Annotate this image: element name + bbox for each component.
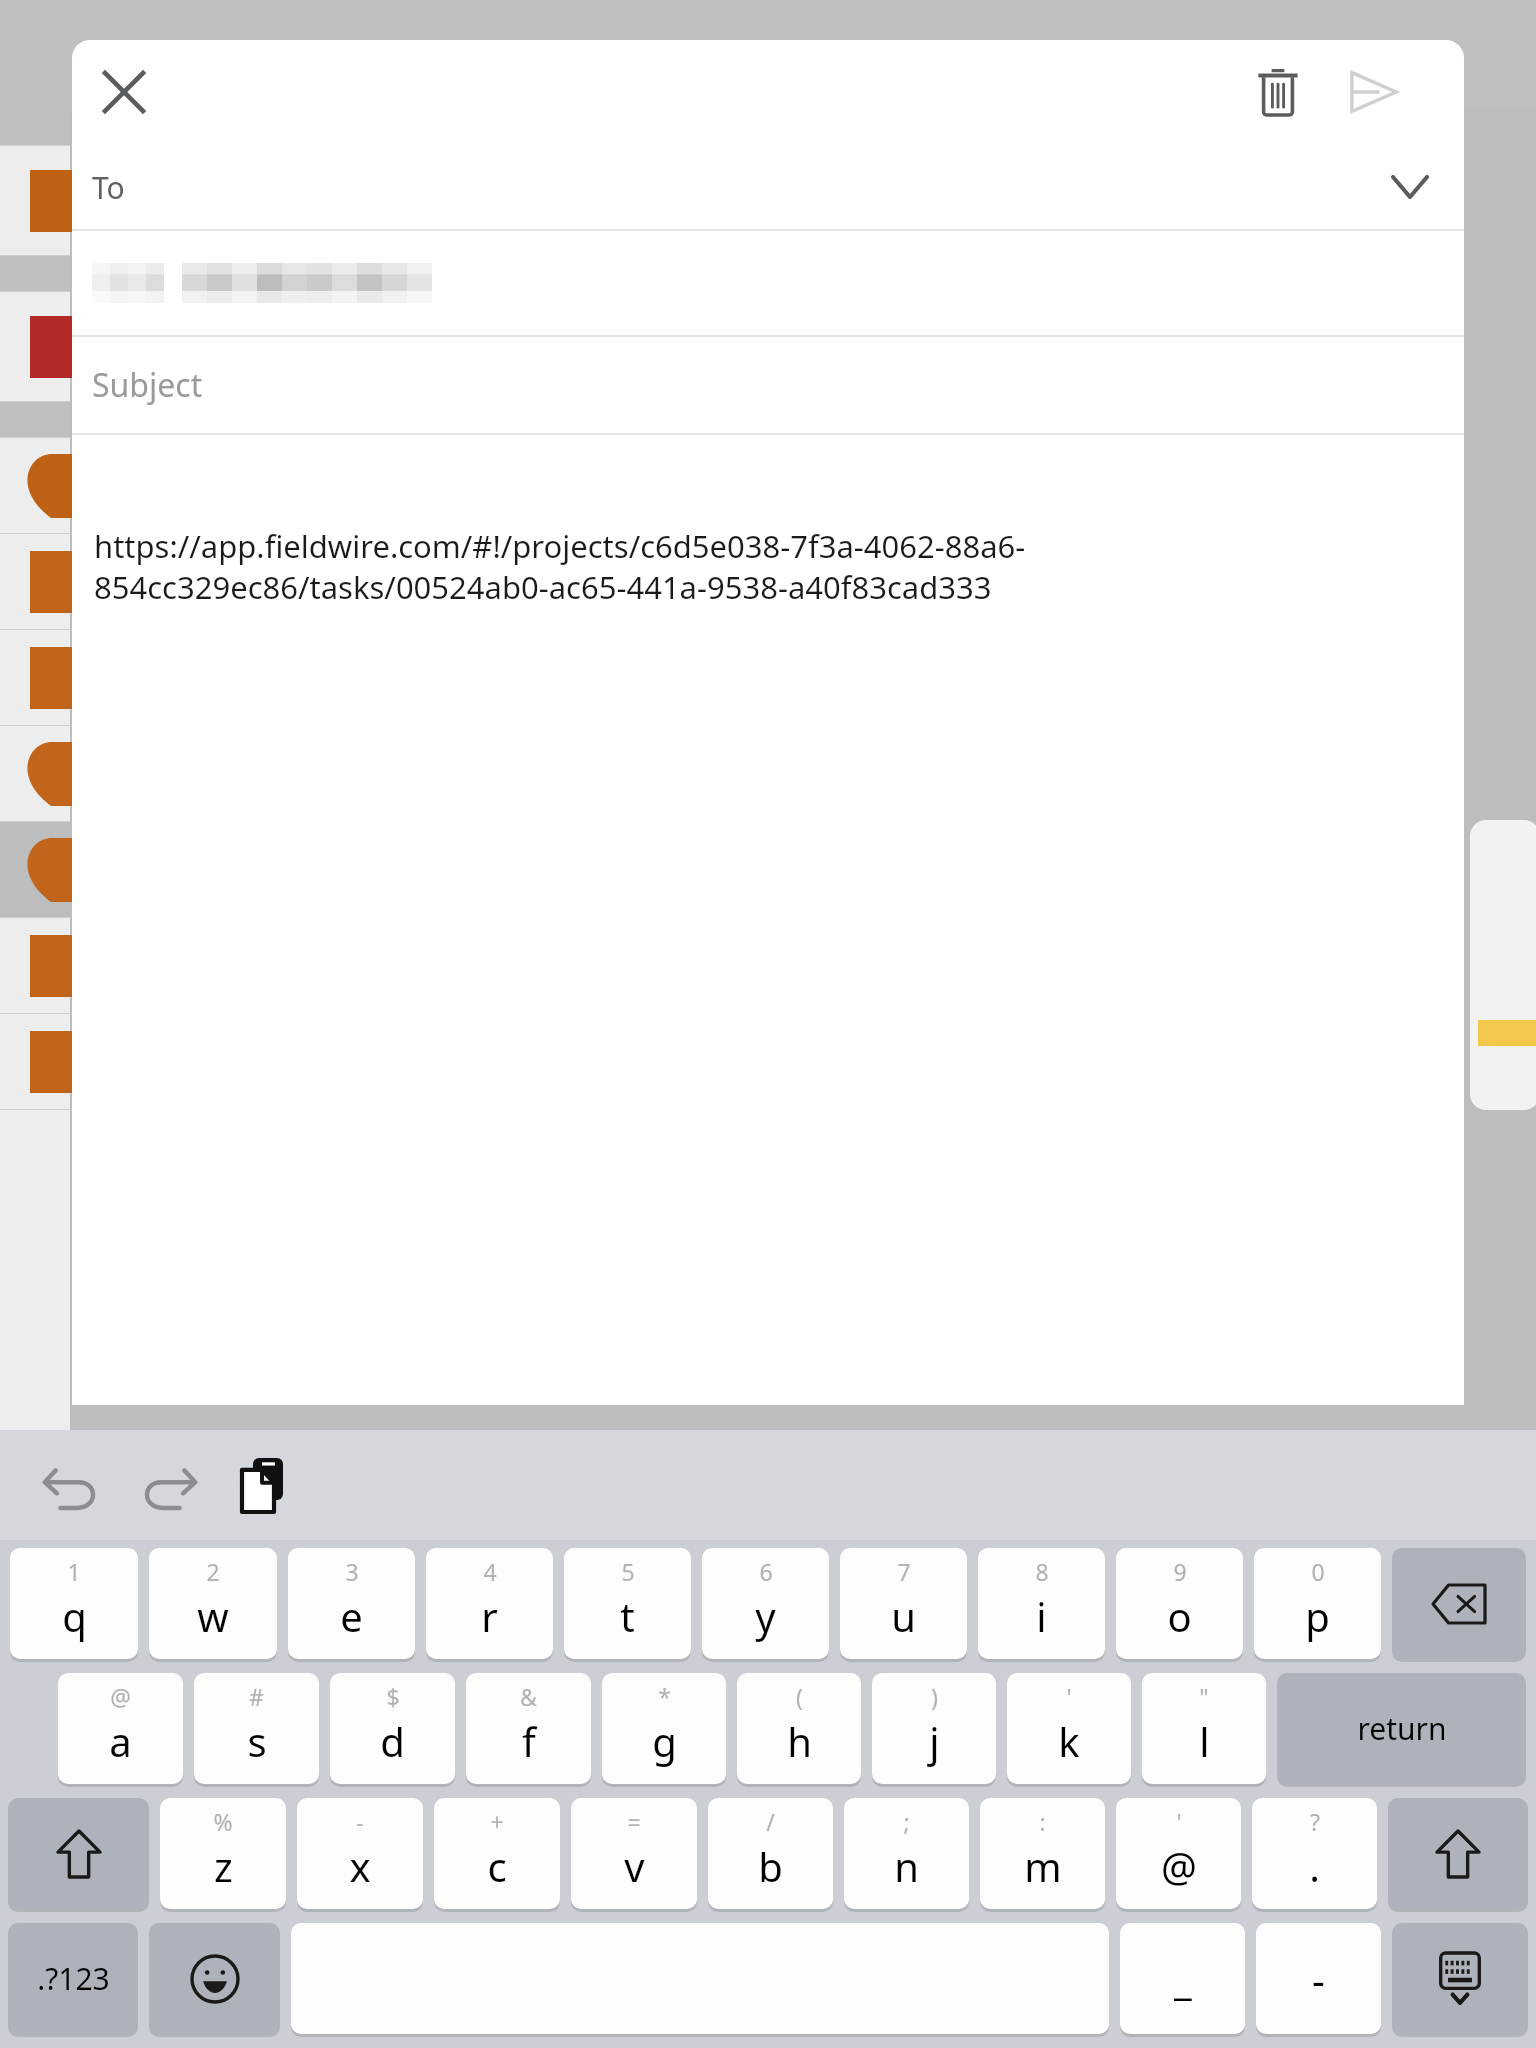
button[interactable]: + — [434, 1798, 560, 1909]
button[interactable]: * — [602, 1673, 726, 1784]
staticText: ) — [931, 1681, 938, 1712]
staticText: i — [1036, 1589, 1047, 1643]
staticText: m — [1024, 1839, 1062, 1893]
button[interactable]: 3 — [288, 1548, 415, 1659]
button[interactable]: # — [194, 1673, 319, 1784]
staticText: e — [340, 1589, 363, 1643]
staticText: d — [380, 1714, 405, 1768]
button[interactable]: Close — [80, 48, 168, 136]
staticText: o — [1167, 1589, 1192, 1643]
staticText: x — [349, 1839, 371, 1893]
button[interactable]: & — [466, 1673, 591, 1784]
staticText: 3 — [345, 1556, 359, 1587]
button[interactable]: _ — [1120, 1923, 1245, 2034]
button[interactable]: 7 — [840, 1548, 967, 1659]
button[interactable]: : — [980, 1798, 1105, 1909]
staticText: = — [627, 1806, 641, 1837]
button[interactable]: ' — [1007, 1673, 1131, 1784]
staticText: return — [1357, 1708, 1447, 1749]
button[interactable]: .?123 — [8, 1923, 138, 2034]
staticText: a — [109, 1714, 132, 1768]
staticText: 5 — [621, 1556, 635, 1587]
button[interactable]: Shift — [1388, 1798, 1528, 1909]
staticText: y — [755, 1589, 776, 1643]
button[interactable]: Hide keyboard — [1392, 1923, 1528, 2034]
staticText: j — [929, 1714, 940, 1768]
button[interactable]: https://app.fieldwire.com/#!/projects/c6… — [72, 435, 1464, 1405]
button[interactable]: - — [297, 1798, 423, 1909]
staticText: s — [247, 1714, 267, 1768]
staticText: g — [652, 1714, 677, 1768]
staticText: f — [522, 1714, 536, 1768]
button[interactable]: ) — [872, 1673, 996, 1784]
button[interactable]: Send — [1328, 46, 1420, 138]
button[interactable]: ( — [737, 1673, 861, 1784]
staticText: # — [249, 1681, 264, 1712]
staticText: : — [1039, 1806, 1046, 1837]
button[interactable]: 4 — [426, 1548, 553, 1659]
button[interactable]: / — [708, 1798, 833, 1909]
button[interactable]: 1 — [10, 1548, 138, 1659]
button[interactable]: 5 — [564, 1548, 691, 1659]
staticText: .?123 — [37, 1958, 110, 1999]
button[interactable]: Subject — [72, 337, 1464, 433]
button[interactable]: - — [1256, 1923, 1381, 2034]
staticText: https://app.fieldwire.com/#!/projects/c6… — [94, 525, 1026, 608]
staticText: 2 — [206, 1556, 220, 1587]
staticText: v — [624, 1839, 645, 1893]
staticText: ' — [1066, 1681, 1072, 1712]
staticText: 0 — [1311, 1556, 1325, 1587]
button[interactable]: ' — [1116, 1798, 1241, 1909]
staticText: - — [1312, 1952, 1325, 2006]
button[interactable]: Redo — [122, 1439, 214, 1531]
staticText: u — [891, 1589, 916, 1643]
staticText: . — [1309, 1839, 1320, 1893]
button[interactable]: % — [160, 1798, 286, 1909]
button[interactable]: To — [72, 145, 1464, 229]
button[interactable]: ? — [1252, 1798, 1377, 1909]
button[interactable] — [72, 231, 1464, 335]
button[interactable]: 8 — [978, 1548, 1105, 1659]
button[interactable]: Emoji — [149, 1923, 280, 2034]
button[interactable]: 0 — [1254, 1548, 1381, 1659]
button[interactable]: Backspace — [1392, 1548, 1526, 1659]
staticText: k — [1058, 1714, 1080, 1768]
button[interactable]: Paste — [218, 1439, 310, 1531]
staticText: To — [92, 167, 125, 208]
staticText: ? — [1310, 1806, 1320, 1837]
staticText: w — [197, 1589, 229, 1643]
staticText: ' — [1176, 1806, 1182, 1837]
button[interactable]: 2 — [149, 1548, 277, 1659]
staticText: b — [758, 1839, 783, 1893]
staticText: z — [214, 1839, 233, 1893]
button[interactable]: ; — [844, 1798, 969, 1909]
button[interactable]: = — [571, 1798, 697, 1909]
staticText: n — [894, 1839, 919, 1893]
button[interactable]: $ — [330, 1673, 455, 1784]
button[interactable]: 9 — [1116, 1548, 1243, 1659]
staticText: " — [1199, 1681, 1209, 1712]
button[interactable]: Undo — [26, 1439, 118, 1531]
button[interactable]: Delete draft — [1232, 46, 1324, 138]
staticText: h — [787, 1714, 812, 1768]
button[interactable]: 6 — [702, 1548, 829, 1659]
button[interactable]: @ — [58, 1673, 183, 1784]
staticText: + — [490, 1806, 504, 1837]
staticText: r — [481, 1589, 498, 1643]
staticText: * — [658, 1681, 671, 1712]
other: Expand recipients — [1374, 151, 1446, 223]
staticText: 7 — [897, 1556, 911, 1587]
staticText: t — [620, 1589, 635, 1643]
staticText: 4 — [483, 1556, 497, 1587]
staticText: @ — [110, 1681, 131, 1712]
staticText: 8 — [1035, 1556, 1049, 1587]
staticText: - — [356, 1806, 364, 1837]
button[interactable]: " — [1142, 1673, 1266, 1784]
staticText: & — [520, 1681, 537, 1712]
button[interactable]: Shift — [8, 1798, 149, 1909]
staticText: Subject — [92, 363, 203, 407]
staticText: c — [487, 1839, 507, 1893]
button[interactable]: return — [1277, 1673, 1526, 1784]
staticText: q — [62, 1589, 87, 1643]
